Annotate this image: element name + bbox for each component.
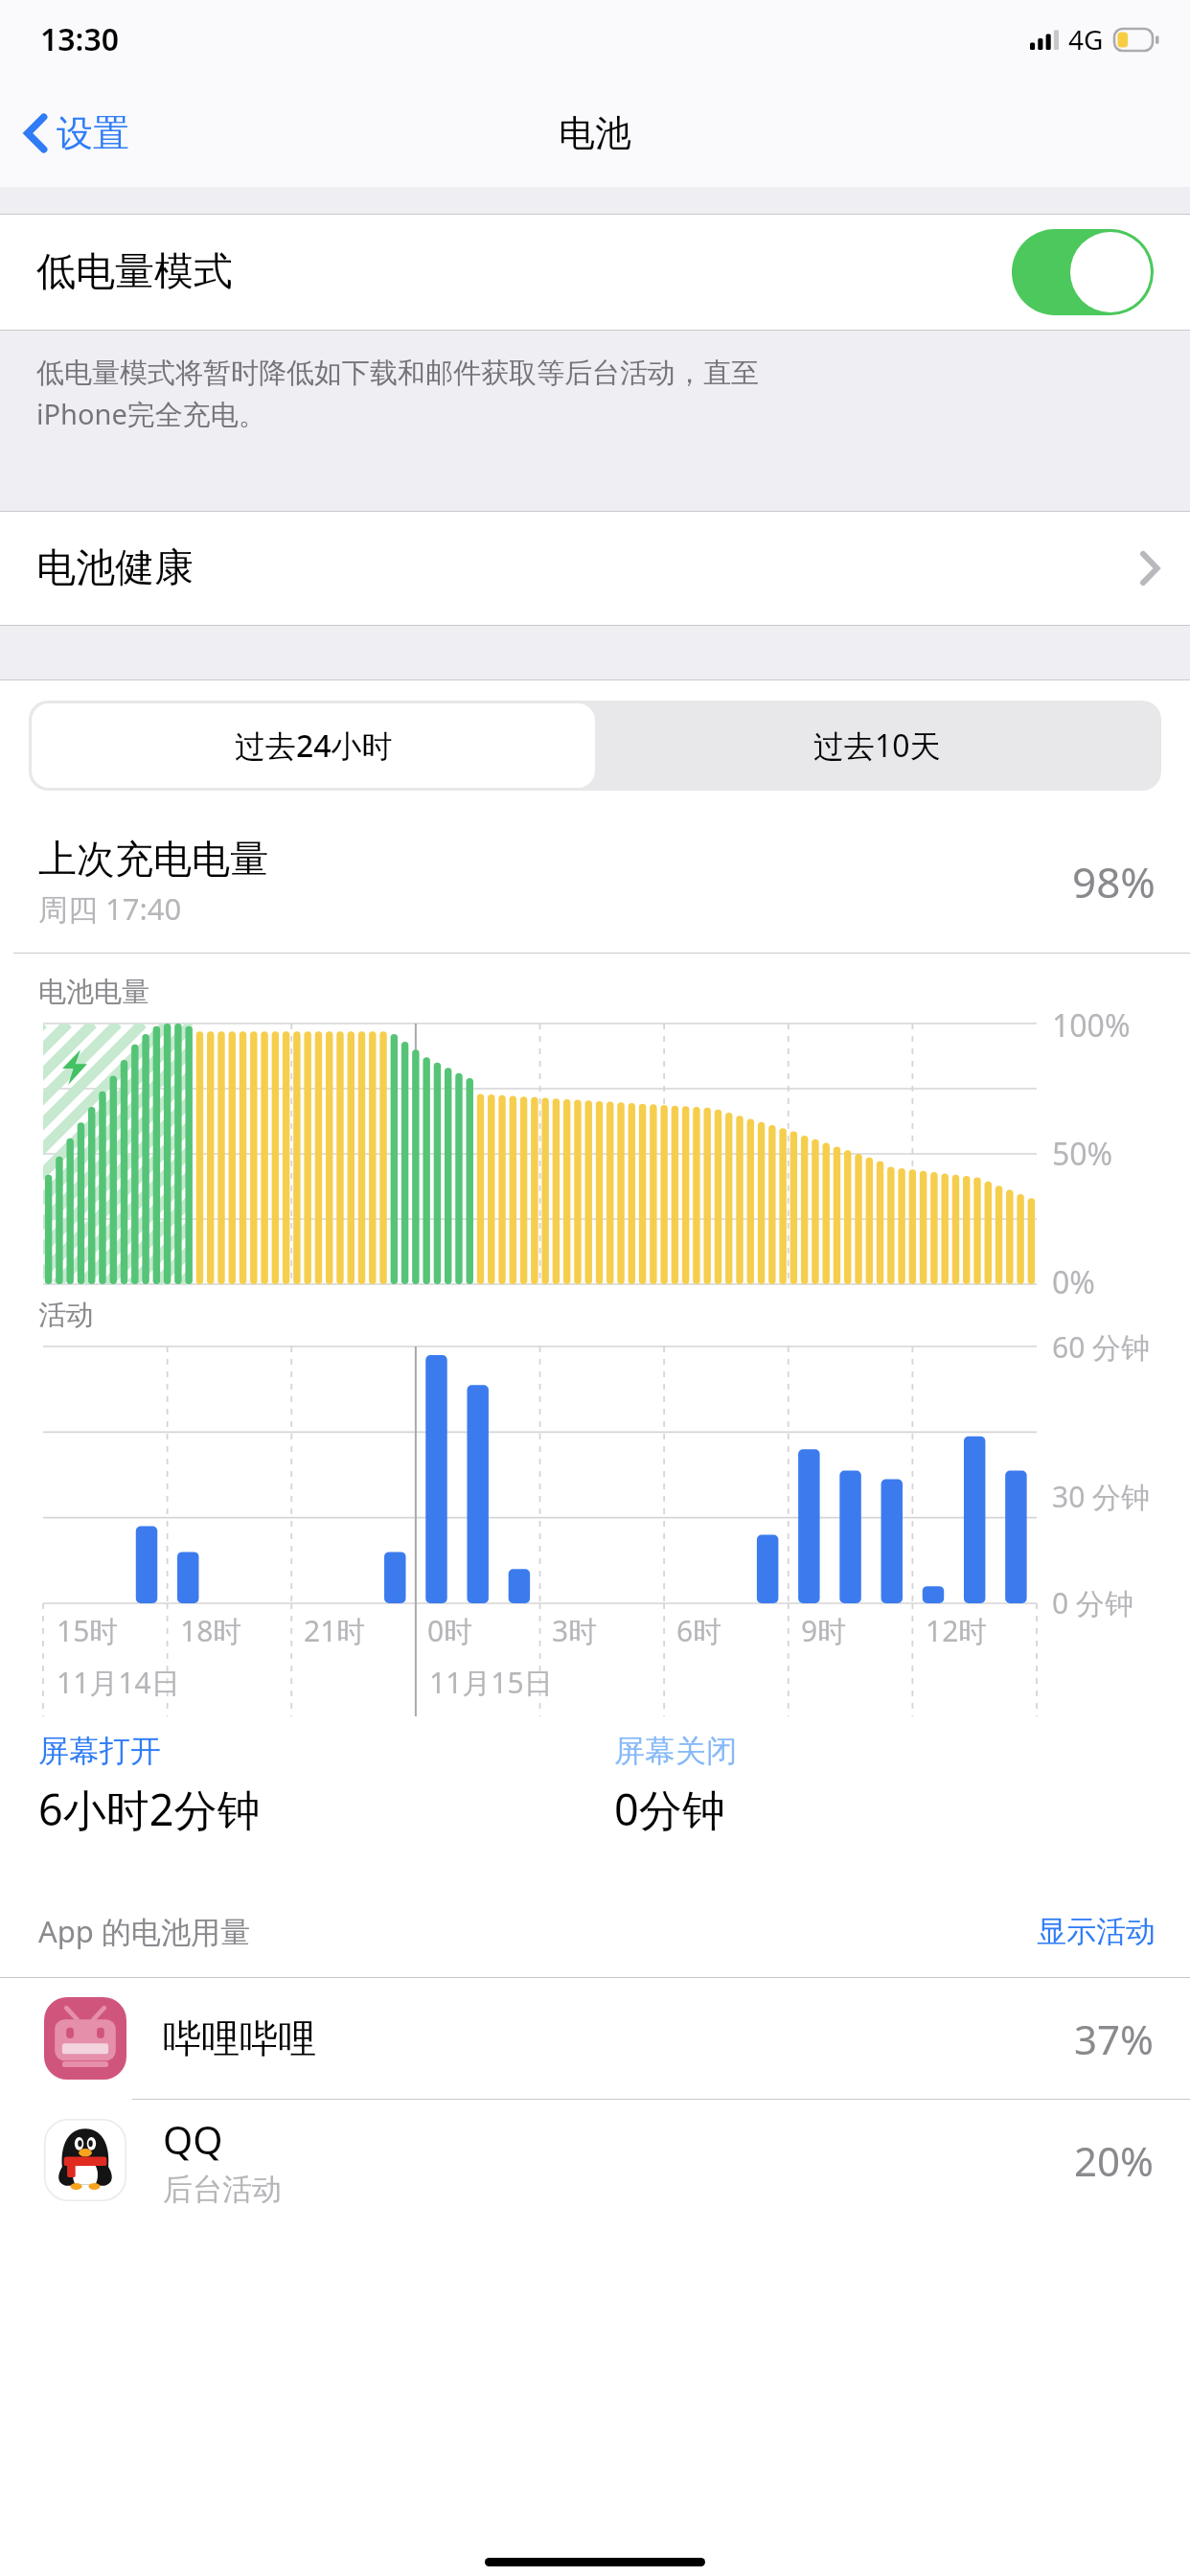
staticText: 低电量模式 bbox=[36, 247, 1012, 297]
staticText: 98% bbox=[1072, 853, 1156, 910]
staticText: 9时 bbox=[801, 1611, 847, 1650]
staticText: 上次充电电量 bbox=[38, 835, 268, 883]
button[interactable]: QQ bbox=[0, 2100, 1190, 2220]
staticText: 30 分钟 bbox=[1052, 1477, 1151, 1516]
staticText: 后台活动 bbox=[163, 2171, 282, 2208]
staticText: 15时 bbox=[57, 1611, 119, 1650]
staticText: 18时 bbox=[180, 1611, 242, 1650]
staticText: 0分钟 bbox=[614, 1780, 725, 1838]
staticText: 4G bbox=[1068, 21, 1104, 57]
staticText: 屏幕关闭 bbox=[614, 1732, 737, 1770]
staticText: 电池 bbox=[559, 110, 631, 156]
staticText: 过去10天 bbox=[813, 724, 941, 767]
staticText: 50% bbox=[1052, 1133, 1113, 1175]
button[interactable]: 屏幕关闭 bbox=[614, 1732, 1190, 1838]
staticText: 11月14日 bbox=[57, 1663, 180, 1702]
staticText: 12时 bbox=[926, 1611, 988, 1650]
staticText: 6时 bbox=[676, 1611, 722, 1650]
staticText: 0时 bbox=[427, 1611, 473, 1650]
staticText: 0 分钟 bbox=[1052, 1583, 1133, 1622]
staticText: 电池电量 bbox=[38, 975, 149, 1010]
staticText: 设置 bbox=[57, 110, 129, 156]
staticText: 3时 bbox=[552, 1611, 598, 1650]
button[interactable]: 低电量模式开关 bbox=[1012, 229, 1154, 315]
staticText: 13:30 bbox=[40, 18, 120, 60]
staticText: 哔哩哔哩 bbox=[163, 2014, 316, 2062]
button[interactable]: 过去24小时 bbox=[32, 703, 595, 788]
staticText: 0% bbox=[1052, 1261, 1095, 1303]
button[interactable]: 设置 bbox=[0, 101, 143, 166]
button[interactable]: 低电量模式 bbox=[0, 215, 1190, 330]
staticText: 20% bbox=[1074, 2133, 1154, 2188]
button[interactable]: 屏幕打开 bbox=[38, 1732, 614, 1838]
staticText: 低电量模式将暂时降低如下载和邮件获取等后台活动，直至 iPhone完全充电。 bbox=[36, 356, 759, 433]
staticText: 屏幕打开 bbox=[38, 1732, 161, 1770]
staticText: App 的电池用量 bbox=[38, 1911, 1037, 1951]
button[interactable]: 过去10天 bbox=[595, 703, 1158, 788]
button[interactable]: 电池健康 bbox=[0, 512, 1190, 625]
staticText: 6小时2分钟 bbox=[38, 1780, 261, 1838]
staticText: 11月15日 bbox=[429, 1663, 553, 1702]
staticText: 37% bbox=[1074, 2012, 1154, 2066]
staticText: 电池健康 bbox=[36, 543, 1140, 593]
button[interactable]: 显示活动 bbox=[1037, 1913, 1156, 1950]
staticText: 100% bbox=[1052, 1004, 1131, 1046]
staticText: QQ bbox=[163, 2113, 223, 2165]
staticText: 活动 bbox=[38, 1298, 94, 1333]
staticText: 过去24小时 bbox=[235, 724, 393, 767]
staticText: 显示活动 bbox=[1037, 1913, 1156, 1950]
button[interactable]: 哔哩哔哩 bbox=[0, 1978, 1190, 2099]
staticText: 21时 bbox=[304, 1611, 366, 1650]
staticText: 周四 17:40 bbox=[38, 888, 182, 929]
staticText: 60 分钟 bbox=[1052, 1327, 1151, 1367]
